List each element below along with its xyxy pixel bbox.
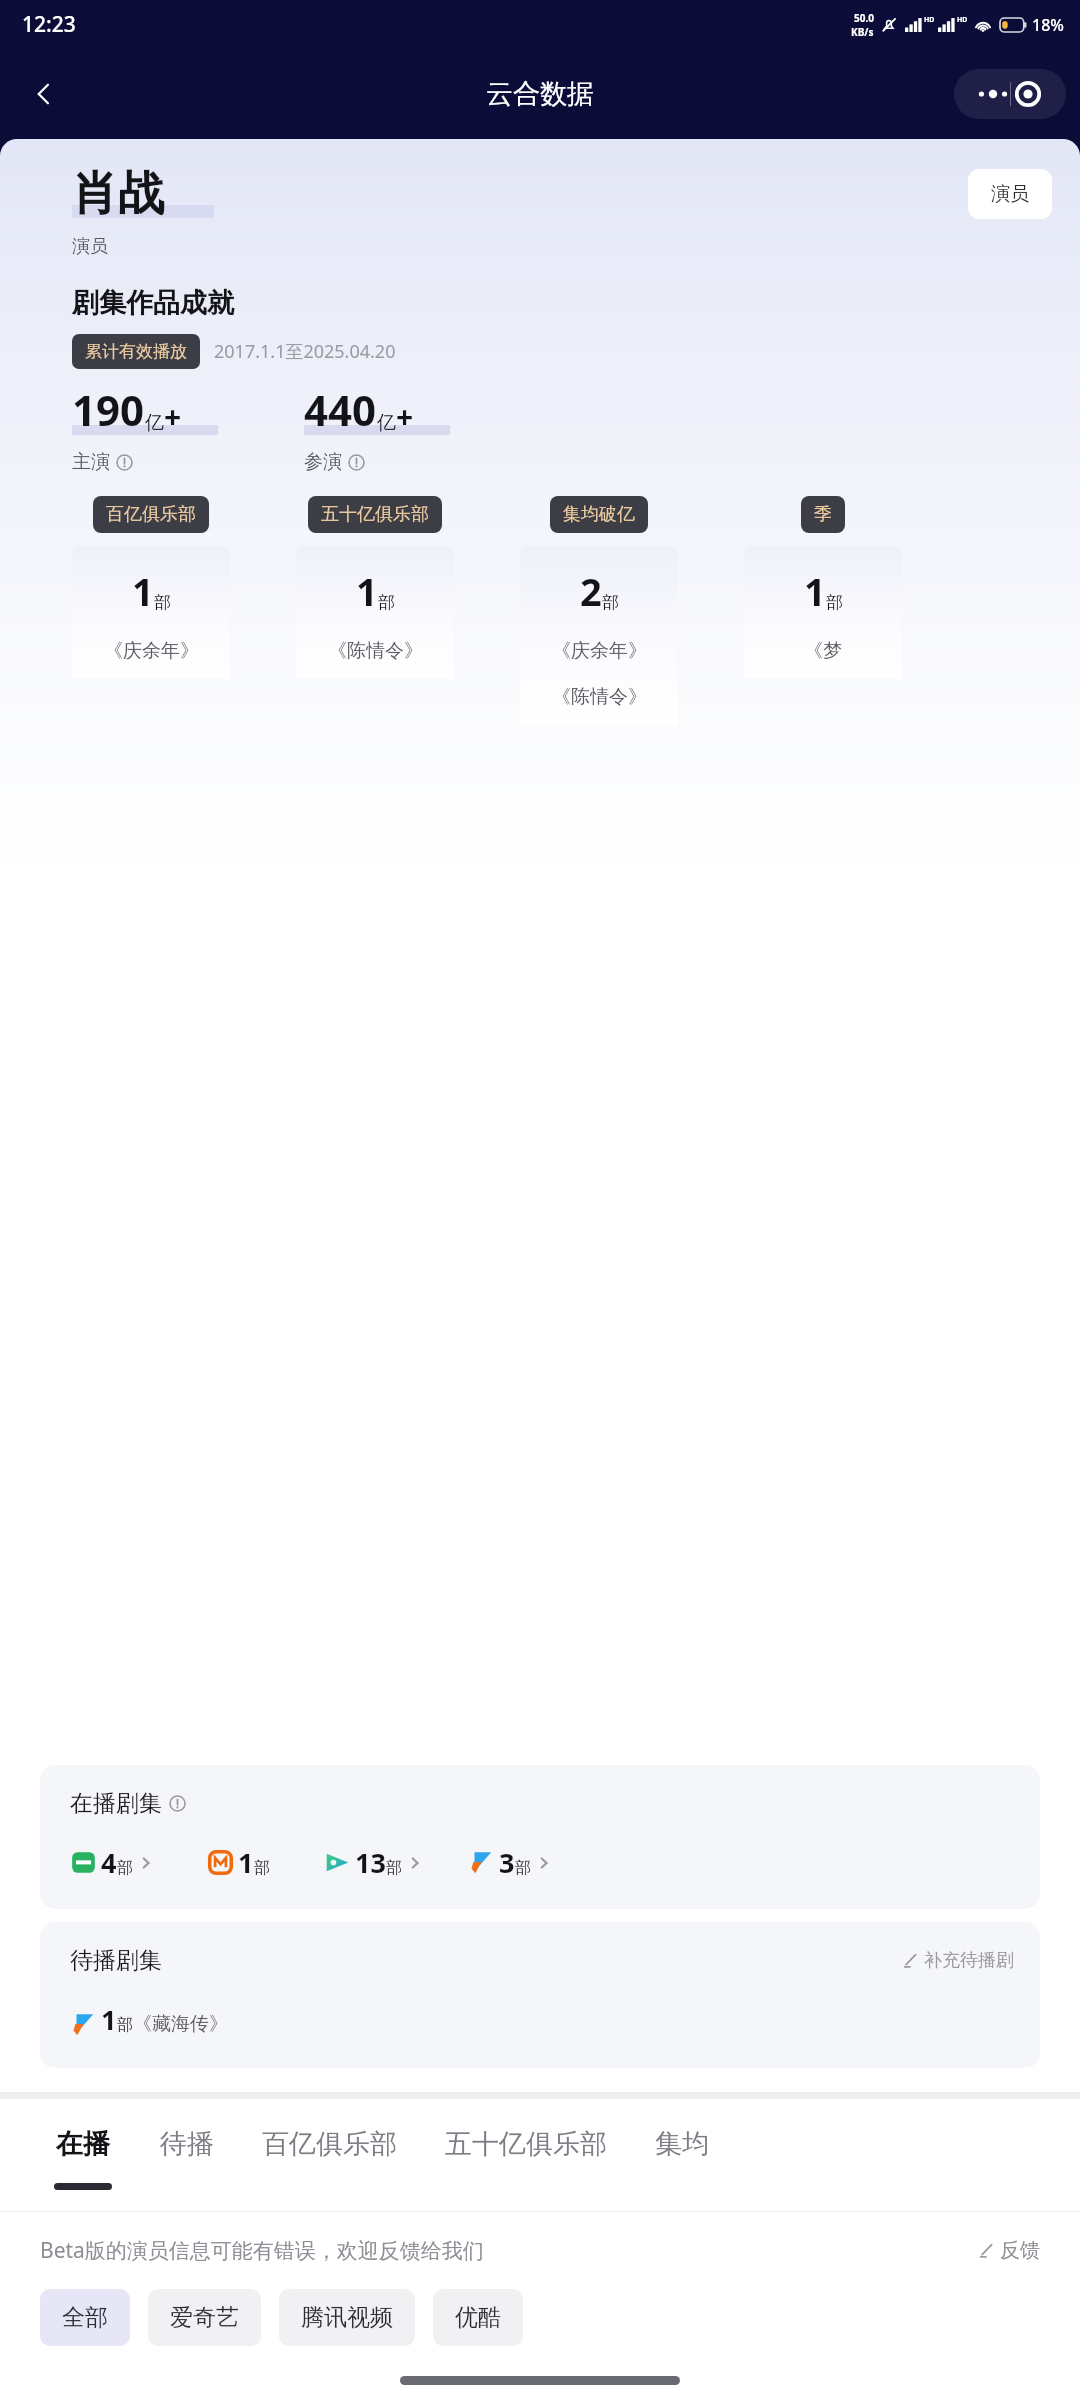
button[interactable]: 爱奇艺 bbox=[148, 2289, 261, 2346]
staticText: 亿 bbox=[377, 411, 396, 435]
staticText: 演员 bbox=[991, 182, 1029, 206]
staticText: 2 bbox=[580, 565, 602, 617]
staticText: 季 bbox=[814, 503, 832, 526]
button[interactable]: 百亿俱乐部 bbox=[262, 2099, 397, 2211]
staticText: 优酷 bbox=[455, 2303, 501, 2332]
button[interactable]: 集均 bbox=[655, 2099, 709, 2211]
staticText: 云合数据 bbox=[486, 77, 594, 111]
staticText: 全部 bbox=[62, 2303, 108, 2332]
staticText: 参演 bbox=[304, 450, 342, 474]
staticText: 在播 bbox=[56, 2127, 110, 2161]
staticText: 五十亿俱乐部 bbox=[321, 503, 429, 526]
staticText: 《陈情令》 bbox=[328, 639, 423, 663]
staticText: 在播剧集 bbox=[70, 1789, 162, 1818]
staticText: 3 bbox=[499, 1844, 515, 1881]
staticText: + bbox=[396, 396, 414, 437]
staticText: 440 bbox=[304, 381, 377, 438]
staticText: Beta版的演员信息可能有错误，欢迎反馈给我们 bbox=[40, 2236, 484, 2265]
staticText: 剧集作品成就 bbox=[72, 286, 234, 320]
button[interactable]: 1 bbox=[207, 1844, 270, 1881]
staticText: 百亿俱乐部 bbox=[106, 503, 196, 526]
staticText: 集均破亿 bbox=[563, 503, 635, 526]
staticText: 主演 bbox=[72, 450, 110, 474]
staticText: 部 bbox=[602, 592, 619, 613]
staticText: 部 bbox=[826, 592, 843, 613]
staticText: 部 bbox=[254, 1858, 270, 1878]
staticText: 4 bbox=[101, 1844, 117, 1881]
staticText: 《梦 bbox=[804, 639, 842, 663]
button[interactable]: 五十亿俱乐部 bbox=[445, 2099, 607, 2211]
staticText: 亿 bbox=[145, 411, 164, 435]
button[interactable]: 4 bbox=[70, 1844, 153, 1881]
staticText: 13 bbox=[355, 1844, 386, 1881]
button[interactable]: Menu and close bbox=[954, 69, 1066, 119]
staticText: 百亿俱乐部 bbox=[262, 2127, 397, 2161]
button[interactable]: 2 bbox=[520, 545, 678, 725]
staticText: HD bbox=[957, 15, 968, 25]
staticText: 《庆余年》 bbox=[552, 639, 647, 663]
staticText: 补充待播剧 bbox=[924, 1949, 1014, 1972]
button[interactable]: 1 bbox=[744, 545, 902, 679]
staticText: 190 bbox=[72, 381, 145, 438]
button[interactable]: 3 bbox=[468, 1844, 551, 1881]
staticText: 部 bbox=[117, 1858, 133, 1878]
staticText: 12:23 bbox=[22, 10, 76, 39]
staticText: 1 bbox=[804, 565, 826, 617]
staticText: 部 bbox=[378, 592, 395, 613]
staticText: 2017.1.1至2025.04.20 bbox=[214, 339, 396, 364]
staticText: 爱奇艺 bbox=[170, 2303, 239, 2332]
staticText: 50.0 bbox=[854, 11, 874, 25]
button[interactable]: 反馈 bbox=[978, 2238, 1040, 2263]
staticText: 《陈情令》 bbox=[552, 685, 647, 709]
button[interactable]: 优酷 bbox=[433, 2289, 523, 2346]
staticText: HD bbox=[924, 15, 935, 25]
button[interactable]: 补充待播剧 bbox=[902, 1949, 1014, 1972]
button[interactable]: 1 bbox=[70, 2001, 228, 2038]
staticText: 部 bbox=[117, 2015, 133, 2035]
staticText: 肖战 bbox=[72, 165, 164, 223]
staticText: 腾讯视频 bbox=[301, 2303, 393, 2332]
staticText: 演员 bbox=[72, 235, 108, 258]
staticText: 《藏海传》 bbox=[133, 2012, 228, 2036]
button[interactable]: 演员 bbox=[968, 169, 1052, 219]
button[interactable]: Back bbox=[18, 68, 70, 120]
staticText: 部 bbox=[386, 1858, 402, 1878]
button[interactable]: 1 bbox=[296, 545, 454, 679]
staticText: 1 bbox=[238, 1844, 254, 1881]
staticText: 五十亿俱乐部 bbox=[445, 2127, 607, 2161]
staticText: 1 bbox=[132, 565, 154, 617]
staticText: 《庆余年》 bbox=[104, 639, 199, 663]
staticText: 集均 bbox=[655, 2127, 709, 2161]
staticText: 待播剧集 bbox=[70, 1946, 162, 1975]
button[interactable]: 腾讯视频 bbox=[279, 2289, 415, 2346]
staticText: 待播 bbox=[160, 2127, 214, 2161]
button[interactable]: 13 bbox=[324, 1844, 422, 1881]
staticText: 反馈 bbox=[1000, 2238, 1040, 2263]
button[interactable]: 在播 bbox=[54, 2099, 112, 2211]
staticText: 1 bbox=[356, 565, 378, 617]
staticText: + bbox=[164, 396, 182, 437]
staticText: 部 bbox=[515, 1858, 531, 1878]
button[interactable]: 待播 bbox=[160, 2099, 214, 2211]
staticText: 部 bbox=[154, 592, 171, 613]
staticText: 1 bbox=[101, 2001, 117, 2038]
button[interactable]: 1 bbox=[72, 545, 230, 679]
staticText: KB/s bbox=[851, 25, 874, 39]
button[interactable]: 全部 bbox=[40, 2289, 130, 2346]
staticText: 18% bbox=[1032, 14, 1064, 36]
staticText: 累计有效播放 bbox=[85, 341, 187, 362]
